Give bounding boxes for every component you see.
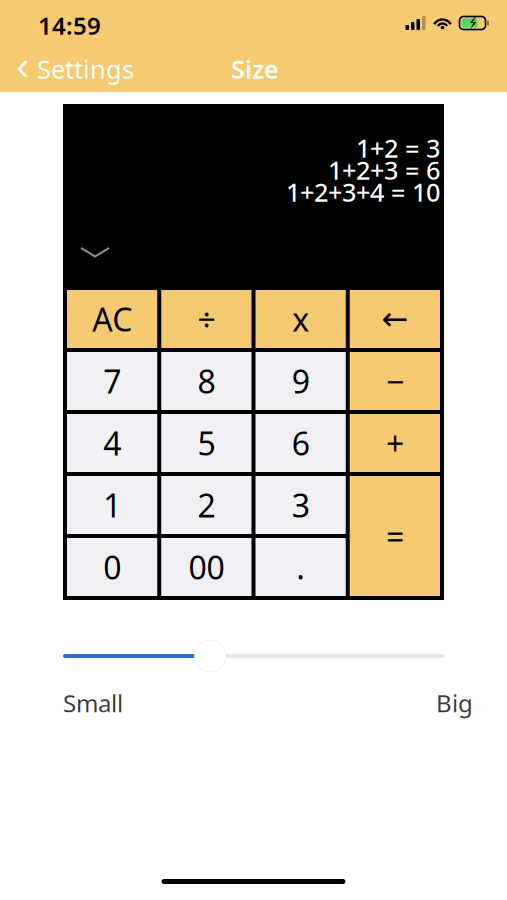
- staticText: Settings: [37, 52, 134, 86]
- button[interactable]: ←: [350, 290, 440, 348]
- staticText: 5: [197, 422, 215, 464]
- staticText: 00: [188, 546, 224, 588]
- staticText: 2: [197, 484, 215, 526]
- staticText: .: [296, 546, 305, 588]
- staticText: 1+2+3+4 = 10: [286, 175, 440, 209]
- button[interactable]: 2: [161, 476, 251, 534]
- staticText: Size: [231, 52, 279, 86]
- staticText: Small: [63, 687, 123, 719]
- staticText: =: [386, 515, 404, 557]
- button[interactable]: x: [255, 290, 346, 348]
- staticText: 8: [197, 360, 215, 402]
- button[interactable]: 1: [67, 476, 157, 534]
- button[interactable]: 3: [255, 476, 346, 534]
- button[interactable]: 5: [161, 414, 251, 472]
- staticText: −: [386, 360, 404, 402]
- staticText: 9: [292, 360, 310, 402]
- button[interactable]: +: [350, 414, 440, 472]
- staticText: 1+2+3 = 6: [328, 153, 440, 187]
- button[interactable]: Size: [63, 639, 444, 673]
- staticText: x: [292, 298, 309, 340]
- button[interactable]: .: [255, 538, 346, 596]
- staticText: 14:59: [38, 10, 101, 41]
- staticText: 7: [103, 360, 121, 402]
- button[interactable]: 4: [67, 414, 157, 472]
- staticText: +: [386, 422, 404, 464]
- staticText: 1: [103, 484, 121, 526]
- staticText: AC: [92, 298, 132, 340]
- staticText: ←: [381, 301, 408, 337]
- staticText: 0: [103, 546, 121, 588]
- button[interactable]: 00: [161, 538, 251, 596]
- button[interactable]: ÷: [161, 290, 251, 348]
- button[interactable]: −: [350, 352, 440, 410]
- staticText: 3: [292, 484, 310, 526]
- staticText: 1+2 = 3: [356, 131, 440, 165]
- button[interactable]: 7: [67, 352, 157, 410]
- button[interactable]: 0: [67, 538, 157, 596]
- button[interactable]: AC: [67, 290, 157, 348]
- button[interactable]: 6: [255, 414, 346, 472]
- button[interactable]: =: [350, 476, 440, 596]
- staticText: Big: [436, 687, 473, 719]
- staticText: ÷: [197, 298, 215, 340]
- button[interactable]: 9: [255, 352, 346, 410]
- button[interactable]: 8: [161, 352, 251, 410]
- staticText: 4: [103, 422, 121, 464]
- button[interactable]: Expand history: [63, 238, 120, 267]
- staticText: 6: [292, 422, 310, 464]
- button[interactable]: Settings: [0, 46, 146, 92]
